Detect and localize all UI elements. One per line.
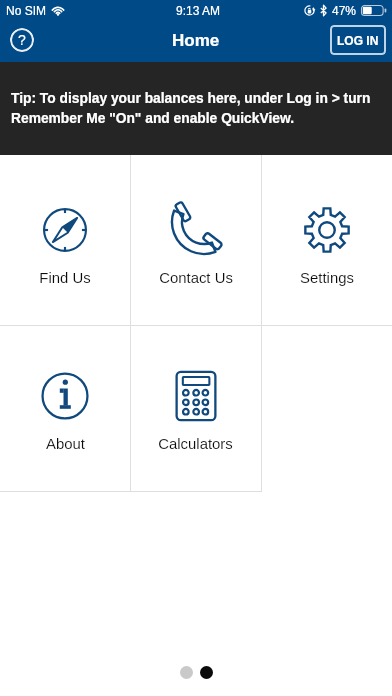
staticText: ? [18, 32, 26, 48]
staticText: Calculators [158, 436, 233, 453]
staticText: Settings [300, 270, 354, 287]
staticText: Contact Us [159, 270, 233, 287]
staticText: Remember Me "On" and enable QuickView. [11, 111, 294, 126]
button[interactable]: Page 2 [200, 666, 213, 679]
staticText: Find Us [39, 270, 91, 287]
button[interactable]: Help [10, 28, 34, 52]
button[interactable]: Contact Us [130, 155, 261, 325]
button[interactable]: Calculators [130, 326, 261, 491]
staticText: No SIM [6, 4, 47, 17]
button[interactable]: About [0, 326, 130, 491]
staticText: 9:13 AM [176, 4, 221, 17]
staticText: LOG IN [337, 34, 379, 47]
staticText: Home [172, 31, 220, 50]
staticText: About [46, 436, 85, 453]
staticText: Tip: To display your balances here, unde… [11, 91, 371, 106]
button[interactable]: Page 1 [180, 666, 193, 679]
button[interactable]: Settings [261, 155, 392, 325]
button[interactable]: LOG IN [330, 25, 386, 55]
button[interactable]: Find Us [0, 155, 130, 325]
staticText: 47% [332, 4, 357, 17]
